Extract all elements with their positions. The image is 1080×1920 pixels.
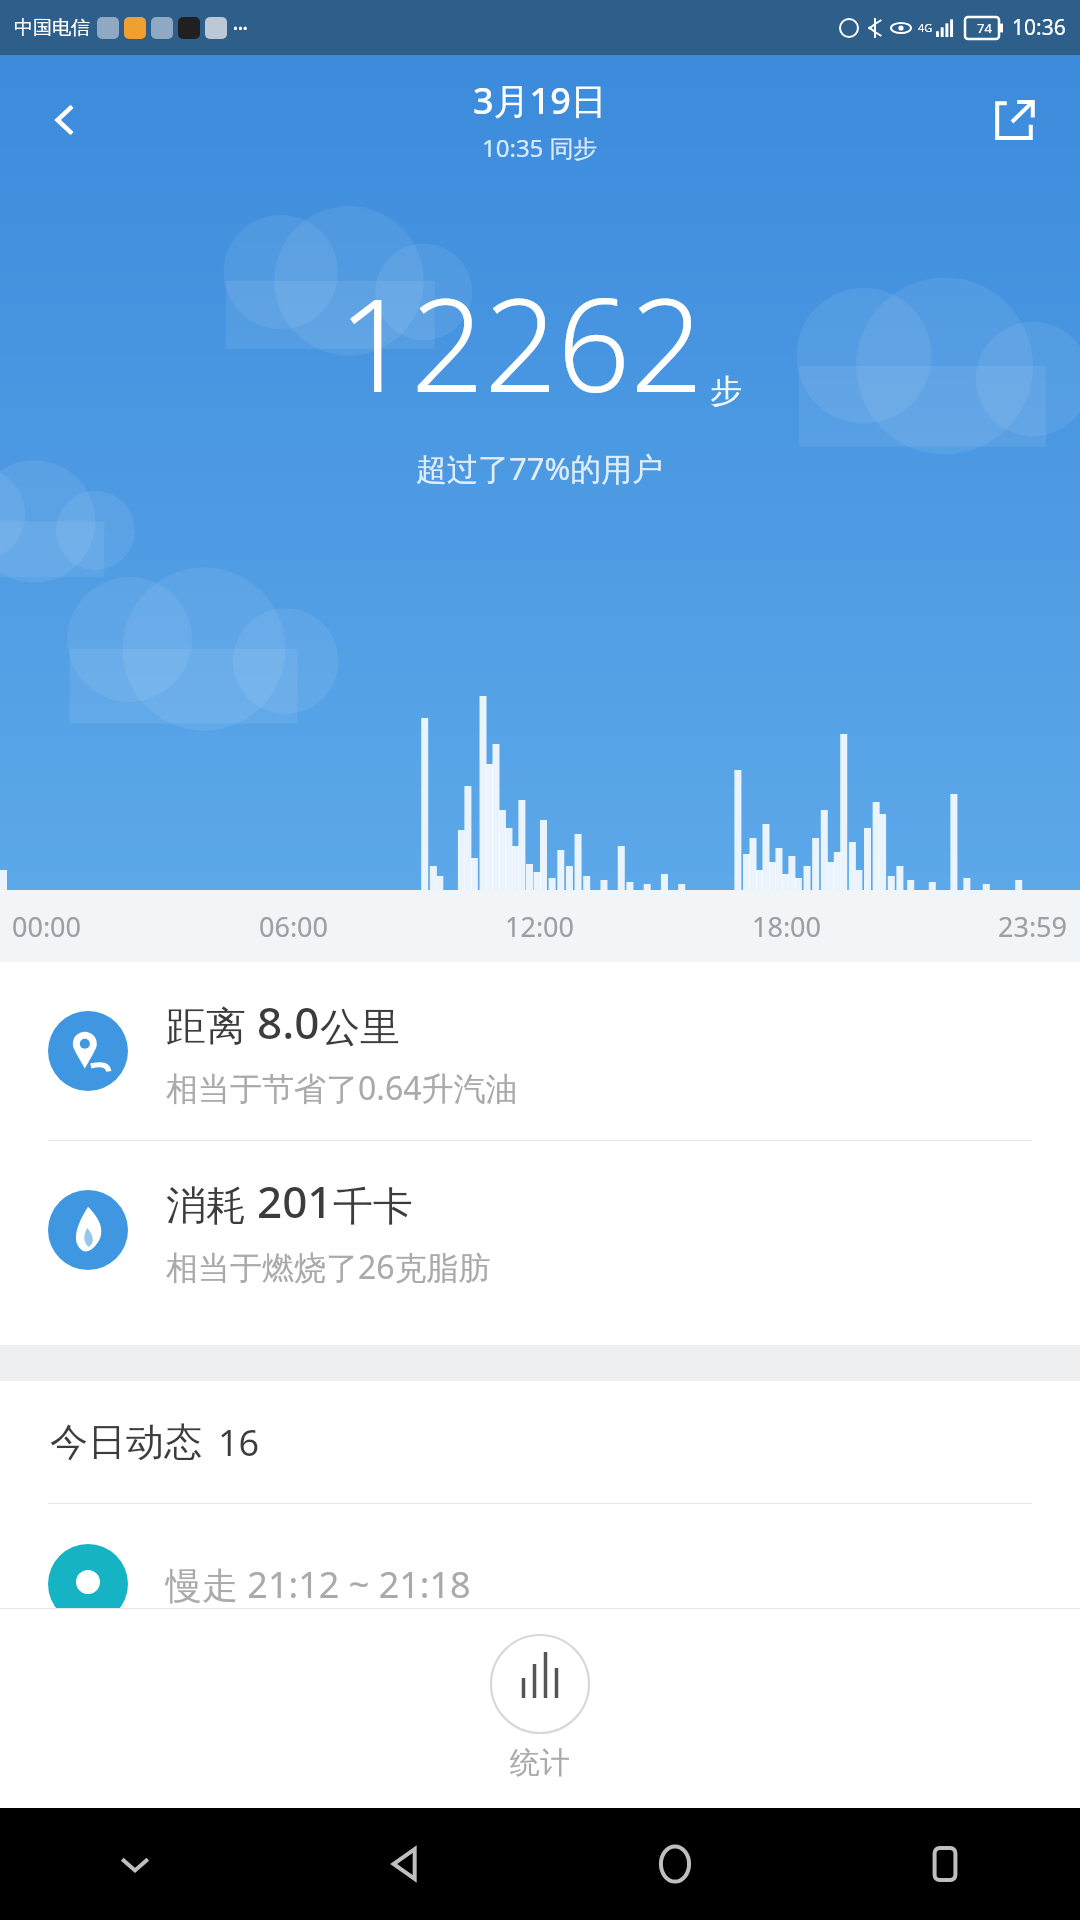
staticText: 4G [918,20,933,35]
button[interactable]: Home [540,1808,810,1920]
button[interactable]: Back [270,1808,540,1920]
staticText: ••• [233,19,248,37]
button[interactable]: 消耗 [0,1141,1080,1319]
staticText: 16 [218,1418,260,1467]
staticText: 06:00 [259,908,329,945]
staticText: 超过了77%的用户 [416,447,664,489]
staticText: 公里 [320,1002,400,1052]
staticText: 步 [710,371,742,411]
staticText: 74 [977,19,992,37]
staticText: 相当于燃烧了26克脂肪 [166,1245,491,1289]
button[interactable]: 统计 [490,1634,590,1782]
staticText: 慢走 21:12 ~ 21:18 [166,1560,471,1609]
button[interactable]: Recent apps [810,1808,1080,1920]
staticText: 千卡 [333,1181,413,1231]
button[interactable]: Share [978,84,1050,156]
staticText: 10:36 [1012,13,1066,42]
staticText: 统计 [510,1744,570,1782]
staticText: 12:00 [505,908,575,945]
button[interactable]: Back [30,84,102,156]
staticText: 3月19日 [473,76,607,125]
staticText: 8.0 [257,992,320,1052]
staticText: 距离 [166,997,257,1052]
staticText: 相当于节省了0.64升汽油 [166,1066,518,1110]
staticText: 消耗 [166,1176,257,1231]
staticText: 00:00 [12,908,82,945]
staticText: 201 [257,1171,333,1231]
staticText: 12262 [338,255,704,429]
button[interactable]: Hide keyboard [0,1808,270,1920]
staticText: 18:00 [752,908,822,945]
staticText: 23:59 [998,908,1068,945]
button[interactable]: 距离 [0,962,1080,1140]
staticText: 10:35 同步 [482,131,598,164]
staticText: 今日动态 [50,1418,202,1466]
staticText: 中国电信 [14,16,90,40]
button[interactable]: 慢走 21:12 ~ 21:18 [0,1504,1080,1664]
